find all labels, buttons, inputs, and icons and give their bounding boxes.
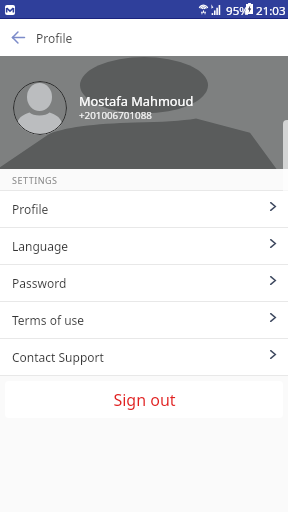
staticText: Language — [12, 238, 69, 254]
button[interactable]: Terms of use — [0, 302, 288, 338]
staticText: Mostafa Mahmoud — [79, 92, 194, 109]
staticText: 21:03 — [256, 3, 286, 19]
staticText: Password — [12, 275, 67, 291]
button[interactable]: Contact Support — [0, 339, 288, 375]
button[interactable]: Sign out — [5, 381, 283, 418]
staticText: SETTINGS — [12, 174, 58, 186]
staticText: Sign out — [113, 389, 176, 411]
button[interactable]: Password — [0, 265, 288, 301]
button[interactable]: Profile — [0, 191, 288, 227]
button[interactable]: Back — [6, 25, 30, 49]
staticText: 95% — [226, 3, 249, 19]
staticText: Profile — [12, 201, 49, 217]
staticText: Terms of use — [12, 312, 85, 328]
staticText: Contact Support — [12, 349, 104, 365]
staticText: +201006701088 — [79, 109, 152, 122]
button[interactable]: Language — [0, 228, 288, 264]
staticText: Profile — [36, 30, 73, 46]
